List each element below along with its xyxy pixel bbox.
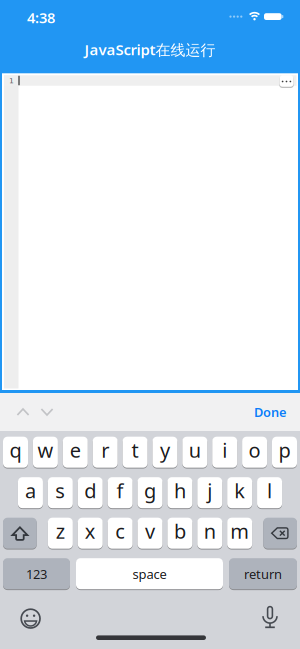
- staticText: i: [222, 436, 227, 463]
- staticText: v: [145, 517, 155, 544]
- staticText: JavaScript在线运行: [84, 39, 215, 60]
- staticText: d: [84, 477, 96, 504]
- staticText: y: [160, 436, 170, 463]
- staticText: 1: [9, 76, 14, 85]
- staticText: a: [25, 477, 36, 504]
- staticText: e: [70, 436, 81, 463]
- staticText: f: [117, 477, 124, 504]
- staticText: u: [189, 436, 201, 463]
- staticText: 4:38: [27, 8, 55, 28]
- staticText: space: [132, 565, 166, 583]
- staticText: w: [37, 436, 53, 463]
- staticText: p: [278, 436, 290, 463]
- staticText: n: [204, 517, 216, 544]
- staticText: k: [234, 477, 245, 504]
- staticText: b: [174, 517, 186, 544]
- staticText: x: [85, 517, 96, 544]
- staticText: h: [174, 477, 186, 504]
- staticText: r: [101, 436, 109, 463]
- staticText: z: [56, 517, 65, 544]
- staticText: j: [207, 477, 212, 504]
- staticText: Done: [254, 403, 286, 421]
- staticText: l: [267, 477, 272, 504]
- staticText: g: [144, 477, 156, 504]
- staticText: s: [55, 477, 65, 504]
- staticText: return: [244, 565, 282, 583]
- staticText: m: [230, 517, 249, 544]
- staticText: q: [9, 436, 21, 463]
- staticText: t: [132, 436, 139, 463]
- staticText: 123: [26, 565, 47, 583]
- staticText: c: [115, 517, 125, 544]
- staticText: o: [249, 436, 261, 463]
